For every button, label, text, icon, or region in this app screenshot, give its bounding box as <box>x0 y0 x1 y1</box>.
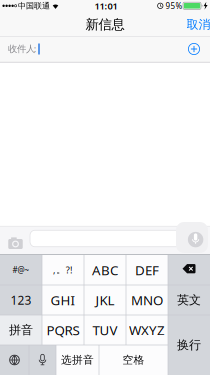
button[interactable]: 换行 <box>168 315 210 375</box>
button[interactable]: 添加联系人 <box>186 41 202 57</box>
button[interactable]: 拼音 <box>0 315 42 345</box>
staticText: 95% <box>165 0 182 11</box>
button[interactable]: 删除 <box>168 255 210 285</box>
staticText: ? <box>66 264 70 276</box>
staticText: 。 <box>56 264 65 276</box>
button[interactable]: GHI <box>42 285 84 315</box>
staticText: 拼音 <box>9 323 33 337</box>
button[interactable]: PQRS <box>42 315 84 345</box>
staticText: 换行 <box>177 338 201 352</box>
button[interactable]: 英文 <box>168 285 210 315</box>
staticText: 新信息 <box>85 16 124 33</box>
button[interactable]: 选拼音 <box>56 345 99 375</box>
staticText: MNO <box>131 291 163 309</box>
button[interactable]: , <box>42 255 84 285</box>
staticText: WXYZ <box>129 321 165 339</box>
button[interactable]: 123 <box>0 285 42 315</box>
button[interactable]: ABC <box>84 255 126 285</box>
button[interactable]: #@~ <box>0 255 42 285</box>
button[interactable]: 语音信息 <box>176 222 208 253</box>
button[interactable]: 照片 <box>4 232 26 250</box>
button[interactable]: 取消 <box>184 14 210 34</box>
staticText: #@~ <box>12 265 29 275</box>
button[interactable]: JKL <box>84 285 126 315</box>
staticText: JKL <box>95 291 114 309</box>
staticText: 收件人 <box>8 43 35 55</box>
button[interactable]: TUV <box>84 315 126 345</box>
button[interactable]: DEF <box>126 255 168 285</box>
button[interactable]: 信息输入框 <box>30 230 183 247</box>
staticText: 空格 <box>122 353 144 366</box>
staticText: 选拼音 <box>61 353 94 366</box>
button[interactable]: 听写 <box>29 345 56 375</box>
staticText: 中国联通 <box>18 1 50 11</box>
staticText: PQRS <box>46 321 79 339</box>
staticText: 英文 <box>177 293 201 307</box>
staticText: , <box>53 264 56 276</box>
staticText: 11:01 <box>94 0 117 12</box>
button[interactable]: 下一个输入法 <box>0 345 29 375</box>
staticText: : <box>34 42 37 55</box>
button[interactable]: WXYZ <box>126 315 168 345</box>
staticText: GHI <box>50 291 75 309</box>
staticText: 取消 <box>186 17 210 32</box>
staticText: TUV <box>92 321 117 339</box>
staticText: DEF <box>135 261 159 279</box>
button[interactable]: MNO <box>126 285 168 315</box>
button[interactable]: 空格 <box>99 345 168 375</box>
staticText: ! <box>70 264 73 276</box>
staticText: 123 <box>10 292 31 308</box>
staticText: ABC <box>92 261 118 279</box>
